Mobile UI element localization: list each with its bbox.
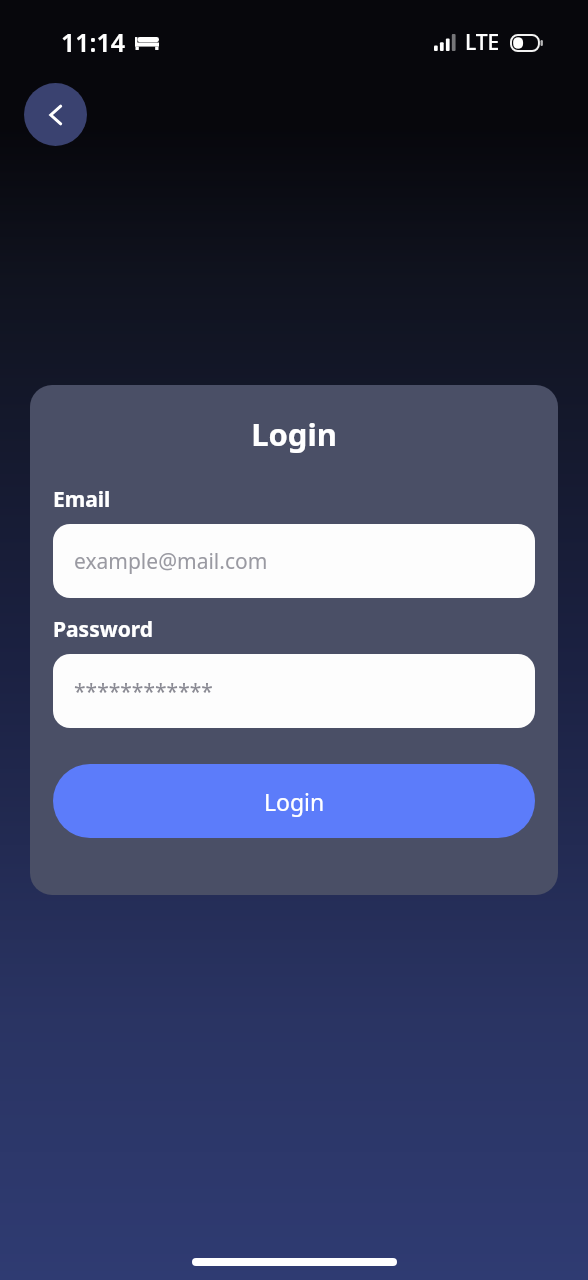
button[interactable]: Password input xyxy=(53,654,535,728)
staticText: example@mail.com xyxy=(74,547,268,576)
button[interactable]: Back xyxy=(24,83,87,146)
staticText: Login xyxy=(264,786,325,817)
staticText: LTE xyxy=(465,28,500,57)
staticText: Password xyxy=(53,615,154,644)
staticText: ************ xyxy=(74,677,213,706)
button[interactable]: Login xyxy=(53,764,535,838)
staticText: Login xyxy=(53,413,535,455)
button[interactable]: Email input xyxy=(53,524,535,598)
staticText: 11:14 xyxy=(61,25,126,59)
staticText: Email xyxy=(53,485,111,514)
